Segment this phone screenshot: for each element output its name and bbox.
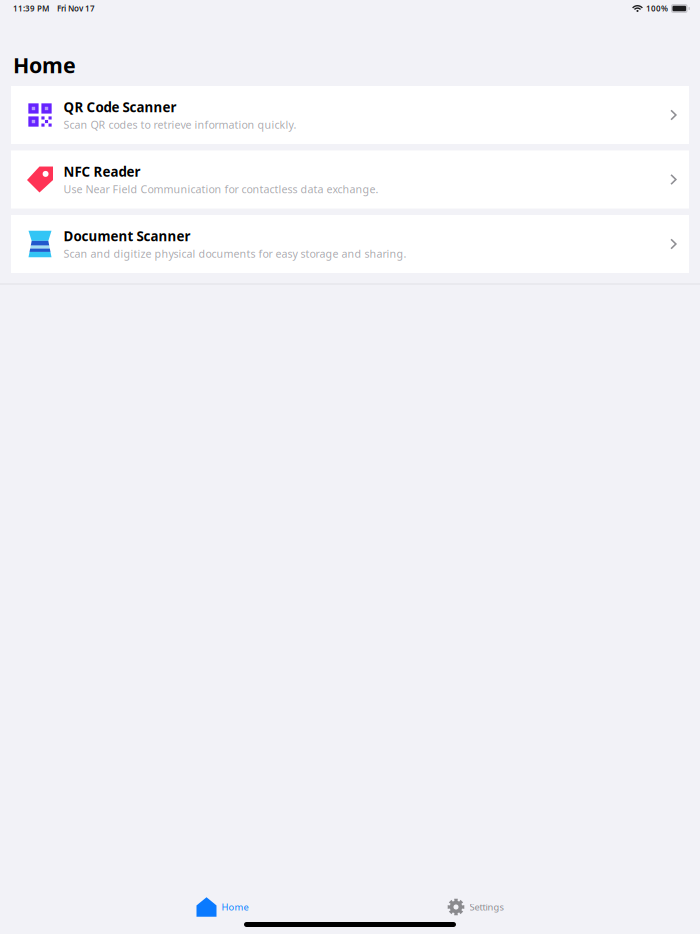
button[interactable]: Document Scanner: [11, 215, 689, 273]
staticText: Settings: [469, 901, 503, 913]
staticText: Home: [221, 901, 248, 913]
staticText: Document Scanner: [63, 227, 190, 245]
staticText: Fri Nov 17: [57, 3, 95, 14]
button[interactable]: QR Code Scanner: [11, 86, 689, 144]
staticText: NFC Reader: [63, 163, 140, 180]
button[interactable]: Settings: [447, 896, 503, 918]
staticText: Scan and digitize physical documents for…: [63, 246, 406, 261]
staticText: 100%: [646, 3, 668, 14]
staticText: Use Near Field Communication for contact…: [63, 182, 378, 196]
button[interactable]: Home: [196, 896, 248, 918]
staticText: 11:39 PM: [13, 3, 49, 14]
button[interactable]: NFC Reader: [11, 150, 689, 208]
staticText: QR Code Scanner: [63, 98, 176, 116]
staticText: Scan QR codes to retrieve information qu…: [63, 117, 296, 132]
staticText: Home: [13, 51, 76, 79]
